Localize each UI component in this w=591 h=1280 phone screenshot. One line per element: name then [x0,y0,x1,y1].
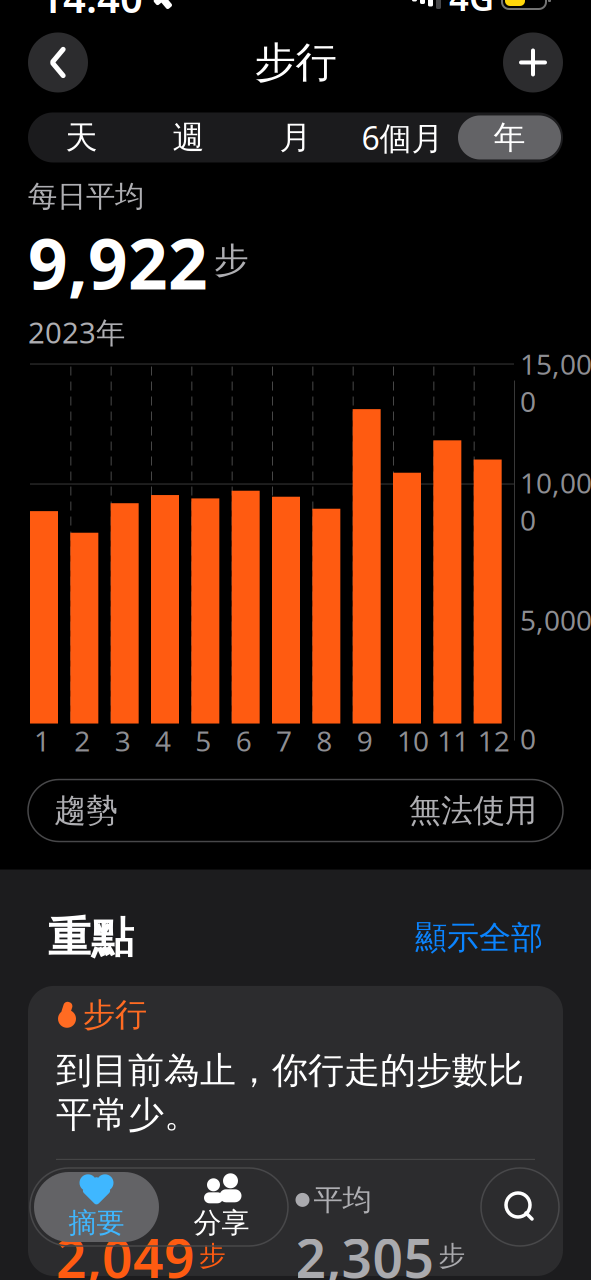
staticText: 10 [397,722,429,759]
staticText: 步 [199,1239,226,1272]
staticText: 到目前為止，你行走的步數比平常少。 [56,1048,524,1137]
button[interactable]: 摘要 [34,1172,159,1242]
staticText: 無法使用 [409,791,537,830]
staticText: 3 [115,722,131,759]
staticText: 每日平均 [28,178,144,214]
staticText: 2 [74,722,90,759]
staticText: 15,000 [520,345,591,420]
staticText: 12 [478,722,510,759]
staticText: 平均 [313,1182,371,1218]
staticText: 今天 [74,1182,132,1218]
button[interactable]: 趨勢 [28,779,563,841]
button[interactable]: 返回 [28,32,88,92]
staticText: 天 [65,118,97,157]
staticText: 2023年 [28,313,125,352]
staticText: 年 [493,118,525,157]
staticText: 摘要 [68,1206,124,1240]
button[interactable]: 加入資料 [503,32,563,92]
staticText: 分享 [193,1206,249,1240]
button[interactable]: 顯示全部 [415,918,543,957]
staticText: 重點 [48,911,134,964]
staticText: 步 [438,1239,465,1272]
staticText: 4 [155,722,171,759]
staticText: 1 [34,722,50,759]
button[interactable]: 分享 [159,1172,284,1242]
staticText: 8 [316,722,332,759]
button[interactable]: 步行 [28,986,563,1276]
staticText: 14:40 [40,0,143,24]
button[interactable]: 月 [242,112,349,162]
staticText: 6 [236,722,252,759]
staticText: 5 [195,722,211,759]
staticText: 0 [520,720,536,757]
staticText: 11 [437,722,469,759]
button[interactable]: 搜尋 [481,1168,559,1246]
button[interactable]: 週 [135,112,242,162]
staticText: 步 [214,239,249,282]
staticText: 2,049 [56,1222,195,1280]
staticText: 5,000 [520,601,591,638]
button[interactable]: 天 [28,112,135,162]
staticText: 9,922 [28,216,208,309]
button[interactable]: 年 [456,112,563,162]
staticText: 步行 [254,37,336,88]
staticText: 2,305 [295,1222,434,1280]
staticText: 7 [276,722,292,759]
staticText: 趨勢 [54,791,118,830]
staticText: 6個月 [361,116,443,159]
staticText: 9 [357,722,373,759]
staticText: 10,000 [520,464,591,538]
staticText: 步行 [83,995,147,1034]
staticText: 週 [172,118,204,157]
button[interactable]: 6個月 [349,112,456,162]
staticText: 月 [279,118,311,157]
staticText: 顯示全部 [415,918,543,957]
staticText: 4G [449,0,494,20]
